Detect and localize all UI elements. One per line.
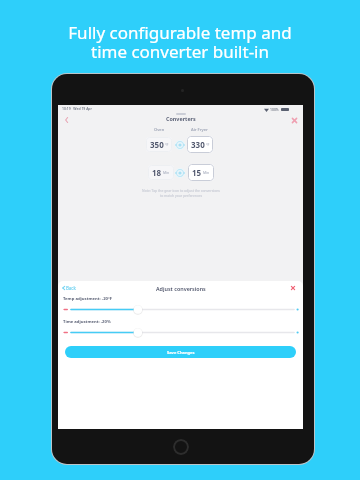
- staticText: 330: [191, 139, 205, 150]
- button[interactable]: Back: [62, 285, 76, 291]
- staticText: Save Changes: [167, 350, 195, 355]
- button[interactable]: Save Changes: [65, 346, 296, 358]
- button[interactable]: Swap values: [175, 168, 185, 178]
- staticText: Fully configurable temp and time convert…: [68, 21, 292, 63]
- staticText: Air Fryer: [191, 127, 208, 132]
- staticText: Min: [203, 170, 210, 175]
- button[interactable]: Back: [59, 113, 73, 127]
- staticText: Back: [66, 285, 76, 291]
- button[interactable]: Close: [287, 113, 301, 127]
- button[interactable]: Close: [287, 282, 299, 294]
- staticText: 350: [150, 139, 164, 150]
- button[interactable]: Swap values: [175, 140, 185, 150]
- button[interactable]: 330: [187, 136, 213, 153]
- button[interactable]: 18: [148, 165, 174, 180]
- staticText: Adjust conversions: [156, 285, 206, 292]
- staticText: 15: [192, 167, 202, 178]
- staticText: 100%: [270, 107, 279, 112]
- button[interactable]: 15: [188, 164, 214, 181]
- staticText: 10:19 Wed 19 Apr: [62, 106, 92, 111]
- staticText: Converters: [166, 115, 196, 122]
- staticText: °F: [165, 142, 169, 147]
- staticText: Min: [163, 170, 170, 175]
- staticText: °F: [206, 142, 210, 147]
- staticText: Oven: [154, 127, 165, 132]
- button[interactable]: 350: [146, 137, 172, 152]
- staticText: Temp adjustment: -20°F: [63, 296, 113, 302]
- staticText: 18: [152, 167, 162, 178]
- staticText: Time adjustment: -20%: [63, 319, 111, 325]
- staticText: Note: Tap the gear icon to adjust the co…: [142, 188, 220, 198]
